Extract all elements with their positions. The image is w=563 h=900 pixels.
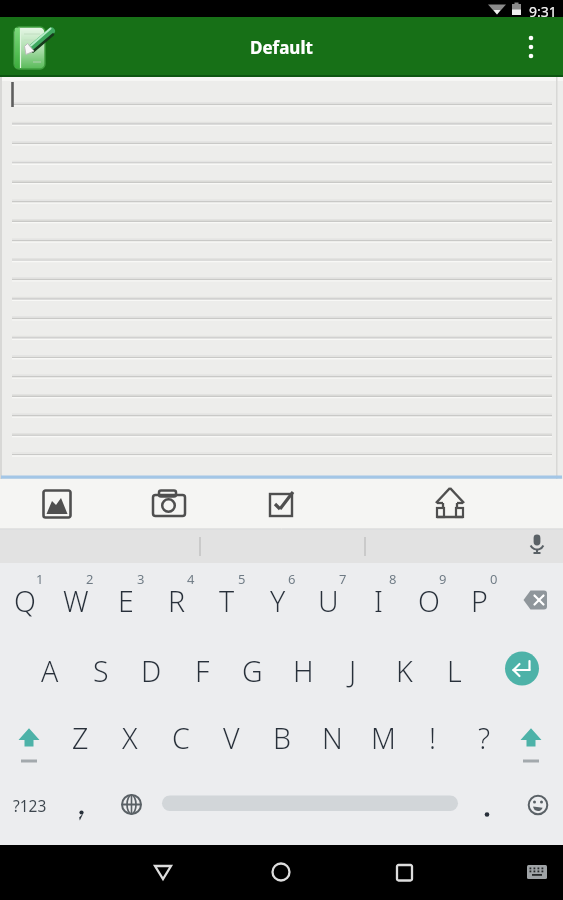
- staticText: 5: [238, 570, 246, 586]
- staticText: F: [195, 652, 210, 691]
- button[interactable]: S: [78, 639, 124, 703]
- staticText: ?: [478, 719, 491, 758]
- button[interactable]: O: [406, 569, 452, 633]
- staticText: X: [122, 719, 138, 758]
- staticText: W: [63, 582, 89, 621]
- staticText: 4: [187, 570, 195, 586]
- button[interactable]: [60, 782, 104, 828]
- staticText: 1: [36, 570, 44, 586]
- button[interactable]: Q: [2, 569, 48, 633]
- button[interactable]: E: [103, 569, 149, 633]
- button[interactable]: [498, 647, 546, 695]
- staticText: G: [242, 652, 263, 691]
- button[interactable]: [465, 782, 509, 828]
- staticText: S: [93, 652, 109, 691]
- button[interactable]: X: [107, 706, 153, 770]
- staticText: R: [168, 582, 186, 621]
- button[interactable]: [33, 480, 81, 528]
- button[interactable]: Z: [57, 706, 103, 770]
- staticText: P: [471, 582, 488, 621]
- button[interactable]: K: [381, 639, 427, 703]
- button[interactable]: [109, 782, 153, 828]
- button[interactable]: G: [229, 639, 275, 703]
- button[interactable]: H: [280, 639, 326, 703]
- staticText: A: [41, 652, 59, 691]
- button[interactable]: V: [208, 706, 254, 770]
- button[interactable]: [6, 20, 56, 74]
- staticText: V: [223, 719, 240, 758]
- button[interactable]: [133, 848, 193, 896]
- button[interactable]: F: [179, 639, 225, 703]
- staticText: U: [318, 582, 339, 621]
- staticText: L: [447, 652, 462, 691]
- staticText: I: [374, 582, 383, 621]
- button[interactable]: [426, 480, 474, 528]
- staticText: Y: [270, 582, 286, 621]
- staticText: 3: [137, 570, 145, 586]
- button[interactable]: B: [259, 706, 305, 770]
- staticText: Z: [72, 719, 89, 758]
- staticText: O: [418, 582, 440, 621]
- button[interactable]: C: [158, 706, 204, 770]
- staticText: T: [219, 582, 235, 621]
- button[interactable]: [370, 848, 430, 896]
- button[interactable]: J: [330, 639, 376, 703]
- button[interactable]: [513, 29, 549, 65]
- staticText: K: [396, 652, 413, 691]
- staticText: E: [118, 582, 134, 621]
- staticText: D: [141, 652, 162, 691]
- button[interactable]: [510, 576, 562, 626]
- button[interactable]: ?: [461, 706, 507, 770]
- button[interactable]: R: [154, 569, 200, 633]
- staticText: 0: [490, 570, 498, 586]
- button[interactable]: P: [456, 569, 502, 633]
- button[interactable]: [515, 782, 559, 828]
- staticText: J: [349, 652, 357, 691]
- button[interactable]: !: [410, 706, 456, 770]
- staticText: N: [322, 719, 343, 758]
- button[interactable]: L: [431, 639, 477, 703]
- button[interactable]: [519, 528, 555, 564]
- staticText: 8: [389, 570, 397, 586]
- button[interactable]: A: [27, 639, 73, 703]
- button[interactable]: W: [53, 569, 99, 633]
- button[interactable]: Y: [255, 569, 301, 633]
- button[interactable]: U: [305, 569, 351, 633]
- staticText: B: [273, 719, 291, 758]
- button[interactable]: [519, 852, 559, 892]
- staticText: Q: [14, 582, 36, 621]
- staticText: H: [293, 652, 314, 691]
- button[interactable]: T: [204, 569, 250, 633]
- button[interactable]: D: [128, 639, 174, 703]
- staticText: C: [172, 719, 190, 758]
- staticText: Default: [250, 36, 313, 59]
- button[interactable]: I: [355, 569, 401, 633]
- staticText: 6: [288, 570, 296, 586]
- button[interactable]: [145, 480, 193, 528]
- staticText: M: [371, 719, 396, 758]
- staticText: 2: [86, 570, 94, 586]
- button[interactable]: ?123: [7, 782, 52, 828]
- staticText: !: [429, 719, 437, 758]
- staticText: ?123: [13, 795, 47, 816]
- button[interactable]: [257, 480, 305, 528]
- button[interactable]: M: [360, 706, 406, 770]
- staticText: 9: [439, 570, 447, 586]
- button[interactable]: N: [309, 706, 355, 770]
- button[interactable]: [7, 713, 51, 761]
- button[interactable]: [160, 780, 458, 828]
- staticText: 7: [339, 570, 347, 586]
- staticText: 9:31: [529, 2, 557, 17]
- button[interactable]: [509, 713, 553, 761]
- button[interactable]: [0, 77, 563, 479]
- button[interactable]: [251, 848, 311, 896]
